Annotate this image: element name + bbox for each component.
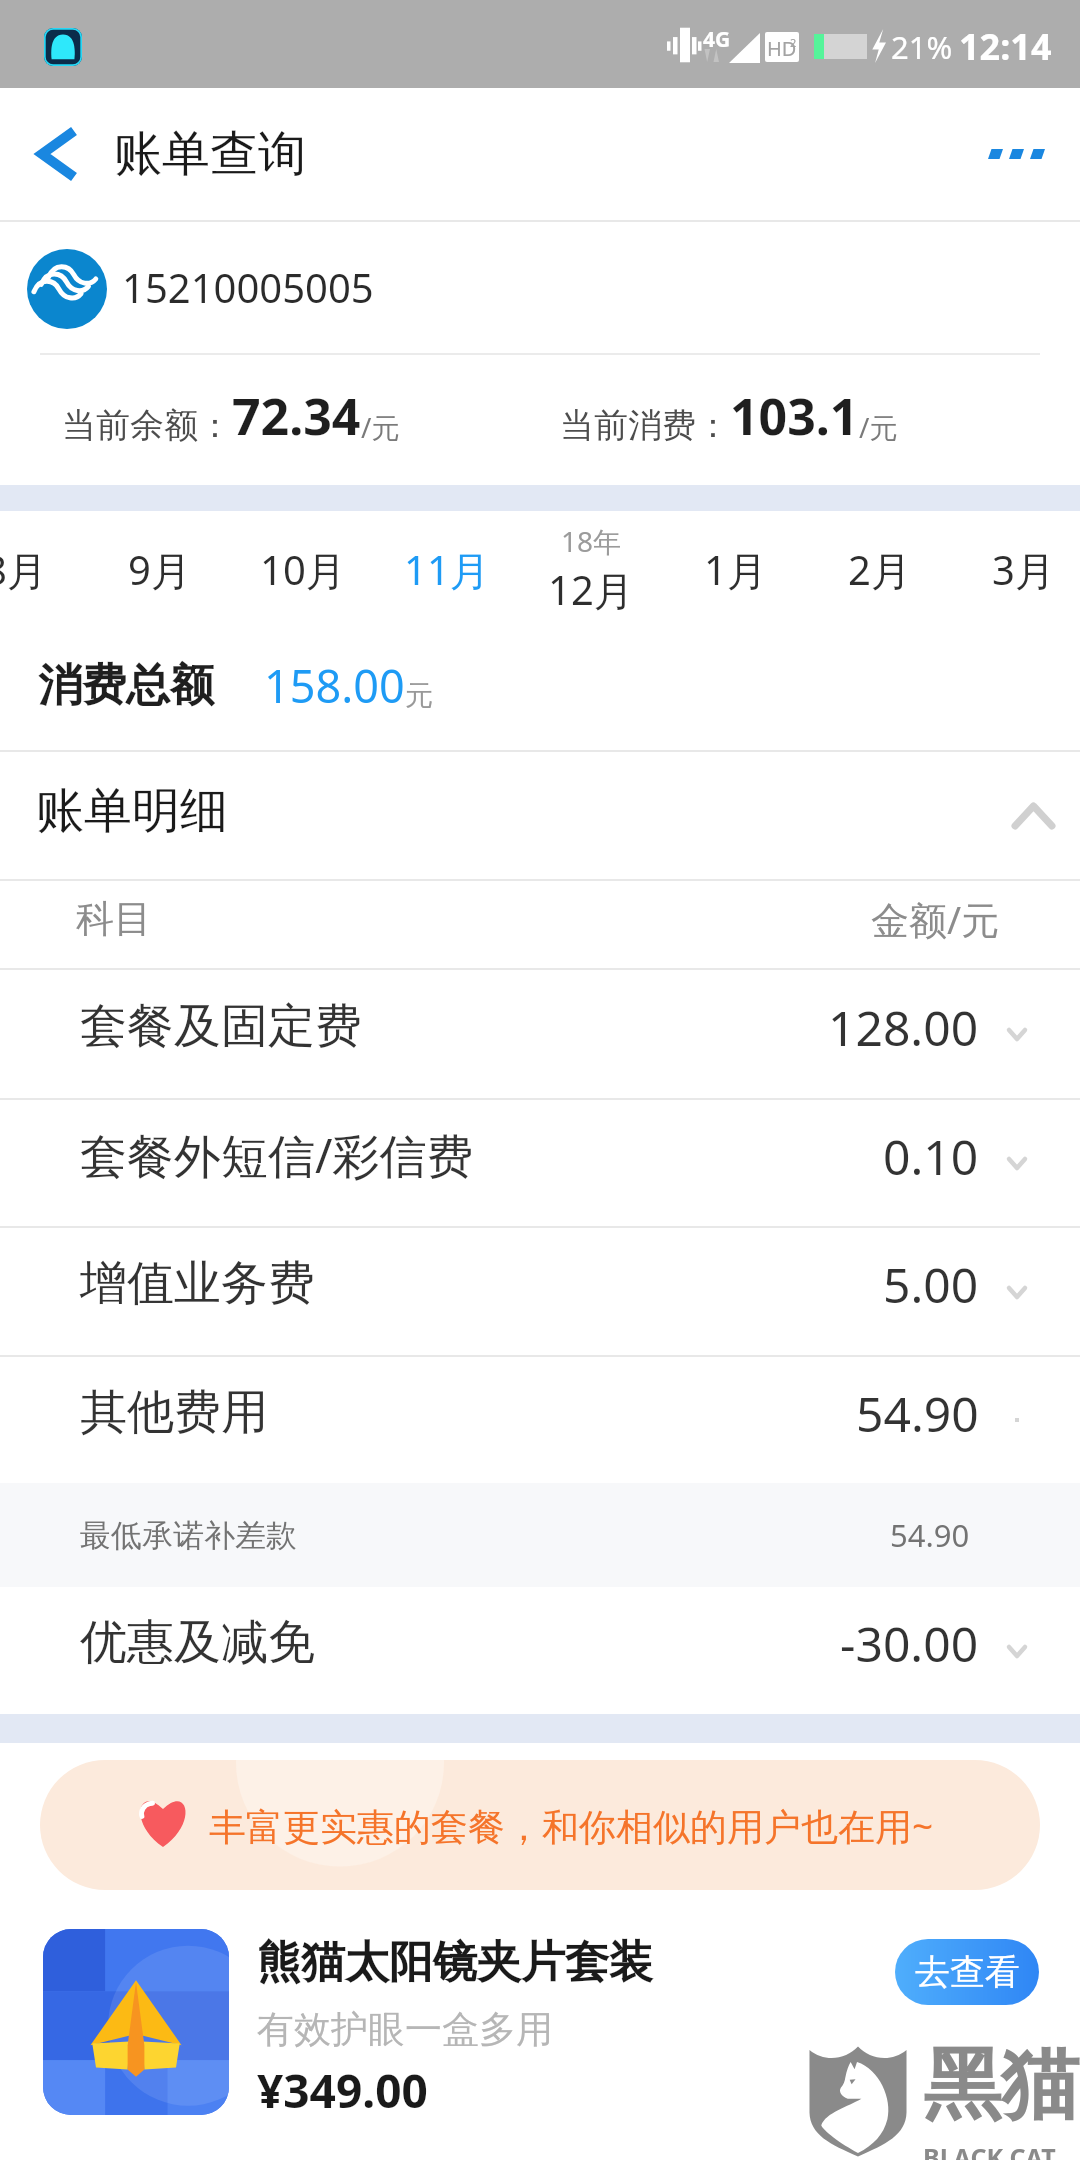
staticText: 优惠及减免 xyxy=(80,1613,315,1672)
staticText: 当前余额： xyxy=(62,404,232,447)
staticText: 9月 xyxy=(128,542,191,597)
staticText: /元 xyxy=(859,408,898,446)
staticText: 0.10 xyxy=(883,1124,979,1189)
staticText: /元 xyxy=(361,408,400,446)
staticText: 当前消费： xyxy=(560,404,730,447)
button[interactable]: 账单明细 xyxy=(0,752,1080,879)
button[interactable]: 其他费用 xyxy=(0,1357,1080,1483)
staticText: 5.00 xyxy=(883,1252,979,1317)
staticText: 128.00 xyxy=(828,995,979,1060)
staticText: 1月 xyxy=(704,542,767,597)
staticText: 15210005005 xyxy=(122,260,374,314)
staticText: 消费总额 xyxy=(38,658,214,713)
staticText: 套餐外短信/彩信费 xyxy=(80,1123,474,1187)
staticText: 72.34 xyxy=(232,382,361,450)
button[interactable]: 8月 xyxy=(0,511,87,628)
button[interactable]: 套餐及固定费 xyxy=(0,970,1080,1098)
staticText: HD xyxy=(767,35,797,62)
staticText: BLACK CAT xyxy=(923,2140,1056,2160)
staticText: 元 xyxy=(405,678,433,713)
button[interactable]: 1月 xyxy=(663,511,807,628)
staticText: 其他费用 xyxy=(80,1383,268,1442)
staticText: 去查看 xyxy=(915,1950,1020,1994)
button[interactable]: 熊猫太阳镜夹片套装 xyxy=(43,1929,1039,2122)
staticText: 11月 xyxy=(404,542,490,597)
staticText: 12:14 xyxy=(959,22,1052,71)
staticText: 54.90 xyxy=(856,1381,979,1446)
staticText: 54.90 xyxy=(890,1514,970,1556)
staticText: 3月 xyxy=(992,542,1055,597)
staticText: 12月 xyxy=(548,562,634,617)
button[interactable]: 10月 xyxy=(231,511,375,628)
button[interactable]: 套餐外短信/彩信费 xyxy=(0,1100,1080,1226)
button[interactable]: 优惠及减免 xyxy=(0,1587,1080,1714)
button[interactable]: 11月 xyxy=(375,511,519,628)
button[interactable]: 2月 xyxy=(807,511,951,628)
staticText: 103.1 xyxy=(730,382,859,450)
staticText: -30.00 xyxy=(840,1611,979,1676)
staticText: 套餐及固定费 xyxy=(80,997,362,1056)
staticText: ¥349.00 xyxy=(257,2059,428,2122)
staticText: 2 xyxy=(790,35,797,50)
button[interactable]: 增值业务费 xyxy=(0,1228,1080,1355)
staticText: 金额/元 xyxy=(871,893,1000,945)
staticText: 158.00 xyxy=(264,655,405,716)
button[interactable]: More options xyxy=(952,88,1080,220)
button[interactable]: 18年 xyxy=(519,511,663,628)
staticText: 10月 xyxy=(260,542,346,597)
staticText: 18年 xyxy=(561,522,622,560)
button[interactable]: 丰富更实惠的套餐，和你相似的用户也在用~ xyxy=(40,1760,1040,1890)
staticText: 2月 xyxy=(848,542,911,597)
button[interactable]: 9月 xyxy=(87,511,231,628)
staticText: 增值业务费 xyxy=(80,1254,315,1313)
staticText: 8月 xyxy=(0,542,47,597)
staticText: 21% xyxy=(891,26,953,68)
button[interactable]: 3月 xyxy=(951,511,1080,628)
staticText: 4G xyxy=(703,25,731,54)
button[interactable]: Back xyxy=(0,88,116,220)
staticText: 账单明细 xyxy=(36,781,228,841)
staticText: 最低承诺补差款 xyxy=(80,1516,297,1555)
staticText: 账单查询 xyxy=(114,124,306,184)
button[interactable]: 去查看 xyxy=(895,1939,1039,2005)
staticText: 科目 xyxy=(76,895,152,943)
staticText: 黑猫 xyxy=(923,2036,1079,2134)
staticText: 有效护眼一盒多用 xyxy=(257,2006,553,2053)
staticText: 丰富更实惠的套餐，和你相似的用户也在用~ xyxy=(209,1800,934,1851)
staticText: 熊猫太阳镜夹片套装 xyxy=(257,1935,653,1990)
